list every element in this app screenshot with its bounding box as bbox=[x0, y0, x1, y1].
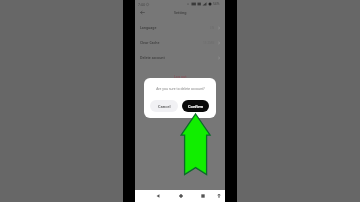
staticText: 54% bbox=[213, 2, 220, 6]
button[interactable]: Recents bbox=[198, 190, 208, 202]
button[interactable]: Home bbox=[176, 190, 186, 202]
staticText: Language bbox=[140, 25, 157, 30]
button[interactable]: Back bbox=[153, 190, 163, 202]
staticText: Clear Cache bbox=[140, 40, 160, 45]
button[interactable]: Keyboard bbox=[214, 190, 224, 202]
staticText: Setting bbox=[174, 10, 187, 15]
staticText: Cancel bbox=[158, 104, 171, 109]
staticText: Confirm bbox=[188, 104, 204, 109]
button[interactable]: Clear Cache bbox=[135, 35, 225, 50]
button[interactable]: Delete account bbox=[135, 50, 225, 65]
staticText: Are you sure to delete account? bbox=[156, 86, 205, 90]
button[interactable]: Confirm bbox=[182, 100, 209, 112]
button[interactable]: Language bbox=[135, 20, 225, 35]
button[interactable]: Log out bbox=[135, 71, 225, 81]
button[interactable]: Back bbox=[137, 7, 147, 17]
staticText: Log out bbox=[174, 74, 187, 79]
staticText: 7:44 bbox=[138, 2, 145, 7]
staticText: Delete account bbox=[140, 55, 165, 60]
button[interactable]: Cancel bbox=[150, 100, 178, 112]
